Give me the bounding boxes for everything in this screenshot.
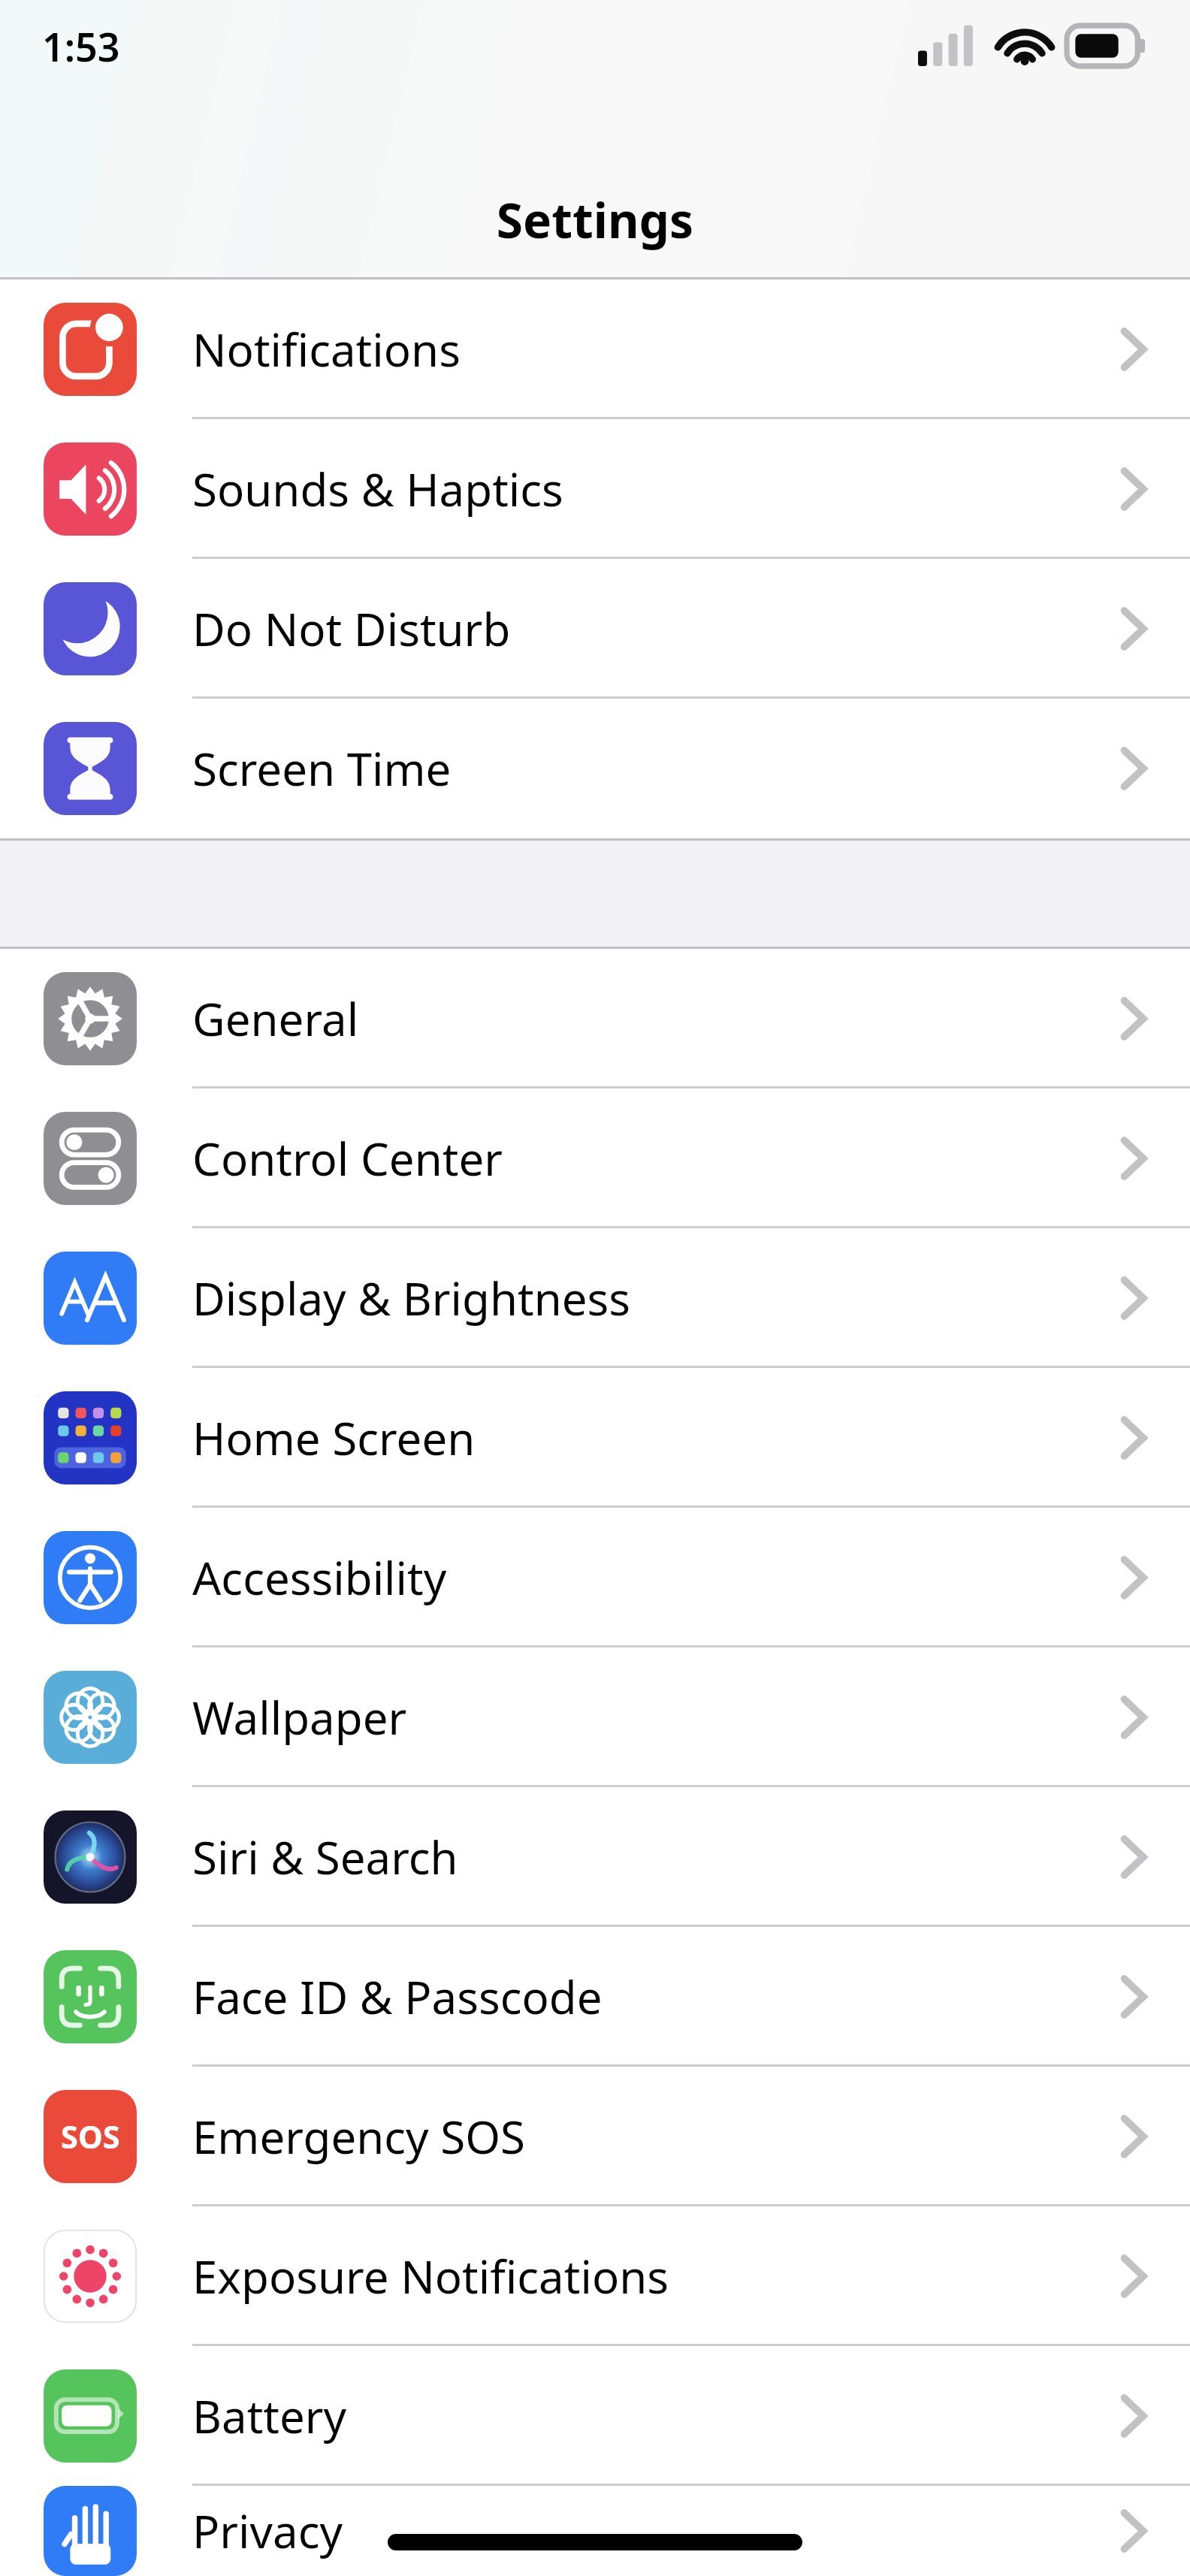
button[interactable]: Notifications [0,279,1190,419]
staticText: Settings [0,187,1190,252]
staticText: General [192,988,359,1049]
button[interactable]: SOS [0,2067,1190,2206]
button[interactable]: Do Not Disturb [0,559,1190,699]
button[interactable]: Battery [0,2346,1190,2486]
staticText: Sounds & Haptics [192,458,563,520]
staticText: 1:53 [42,20,120,73]
button[interactable]: General [0,949,1190,1089]
staticText: Control Center [192,1128,503,1189]
staticText: Wallpaper [192,1687,407,1748]
button[interactable]: Siri & Search [0,1787,1190,1927]
button[interactable]: Accessibility [0,1508,1190,1647]
staticText: Privacy [192,2500,343,2562]
button[interactable]: Sounds & Haptics [0,419,1190,559]
staticText: SOS [61,2115,120,2158]
staticText: Display & Brightness [192,1267,631,1329]
button[interactable]: Privacy [0,2486,1190,2576]
staticText: Emergency SOS [192,2106,526,2167]
staticText: Home Screen [192,1407,476,1469]
button[interactable]: Display & Brightness [0,1228,1190,1368]
staticText: Battery [192,2385,347,2447]
button[interactable]: Home Screen [0,1368,1190,1508]
staticText: Notifications [192,319,461,380]
button[interactable]: Screen Time [0,699,1190,838]
button[interactable]: Face ID & Passcode [0,1927,1190,2067]
button[interactable]: Exposure Notifications [0,2206,1190,2346]
button[interactable]: Control Center [0,1089,1190,1228]
staticText: Face ID & Passcode [192,1966,603,2028]
staticText: Accessibility [192,1547,447,1608]
staticText: Screen Time [192,738,452,799]
button[interactable]: Wallpaper [0,1647,1190,1787]
staticText: Siri & Search [192,1826,458,1888]
staticText: Do Not Disturb [192,598,511,660]
staticText: Exposure Notifications [192,2245,669,2307]
